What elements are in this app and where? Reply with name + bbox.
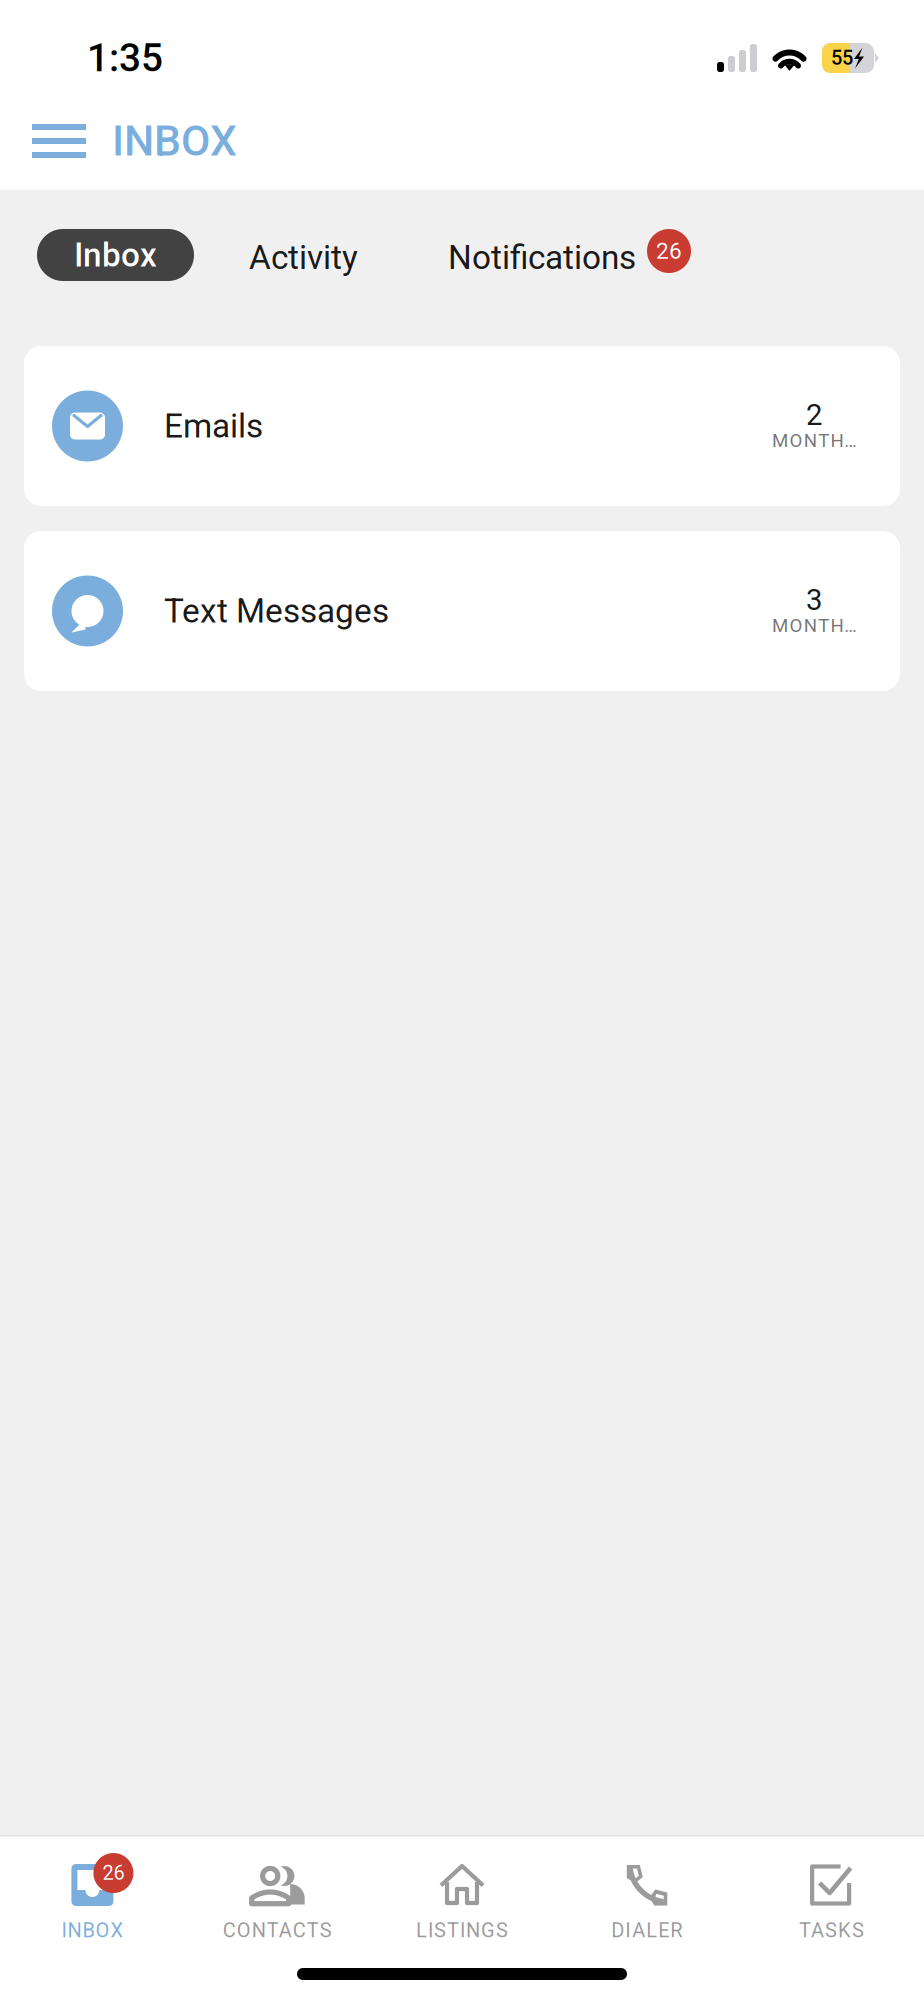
staticText: Notifications — [448, 238, 636, 277]
staticText: Emails — [164, 406, 263, 446]
button[interactable]: TASKS — [739, 1863, 924, 1941]
staticText: 1:35 — [87, 35, 163, 81]
staticText: Activity — [249, 238, 358, 277]
staticText: 26 — [102, 1861, 124, 1885]
button[interactable]: Menu — [0, 98, 112, 184]
staticText: Text Messages — [164, 591, 389, 631]
staticText: TASKS — [799, 1919, 864, 1942]
staticText: 2 — [806, 398, 822, 432]
button[interactable]: Inbox — [37, 229, 194, 281]
button[interactable]: Activity — [249, 229, 358, 273]
button[interactable]: 26 — [0, 1863, 185, 1941]
staticText: MONTHS — [772, 430, 856, 451]
staticText: LISTINGS — [416, 1919, 508, 1942]
button[interactable]: Text Messages — [24, 531, 900, 691]
staticText: 55 — [831, 46, 853, 70]
staticText: Inbox — [74, 235, 157, 275]
staticText: DIALER — [611, 1919, 682, 1942]
staticText: INBOX — [112, 116, 237, 166]
button[interactable]: CONTACTS — [185, 1863, 370, 1941]
staticText: 3 — [806, 583, 822, 617]
staticText: MONTHS — [772, 615, 856, 636]
button[interactable]: Notifications — [448, 229, 691, 273]
staticText: INBOX — [61, 1919, 123, 1942]
button[interactable]: Emails — [24, 346, 900, 506]
staticText: CONTACTS — [223, 1919, 332, 1942]
staticText: 26 — [656, 238, 682, 264]
button[interactable]: LISTINGS — [370, 1863, 554, 1941]
button[interactable]: DIALER — [554, 1863, 739, 1941]
